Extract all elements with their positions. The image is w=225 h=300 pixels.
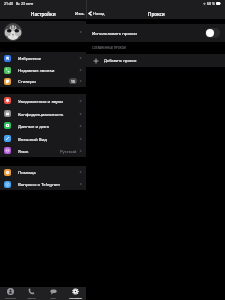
staticText: Данные и диск (18, 123, 50, 129)
button[interactable]: Добавить прокси (86, 54, 225, 67)
staticText: 68 % (207, 1, 215, 6)
staticText: Вс 23 сент (16, 1, 34, 6)
staticText: Настройки (31, 11, 56, 17)
button[interactable]: Настройки (64, 287, 86, 300)
button[interactable]: Использовать прокси (86, 24, 225, 42)
staticText: Чаты (50, 296, 56, 299)
button[interactable]: Помощь (0, 166, 86, 178)
button[interactable]: Звонки (21, 287, 42, 300)
staticText: Использовать прокси (92, 30, 138, 36)
button[interactable]: Назад (87, 11, 105, 16)
button[interactable]: Изм. (74, 11, 86, 17)
button[interactable]: Данные и диск (0, 119, 86, 132)
staticText: Звонки (27, 296, 36, 299)
staticText: Русский (60, 148, 77, 154)
button[interactable]: Вопросы о Telegram (0, 178, 86, 190)
button[interactable]: Избранное (0, 52, 86, 64)
button[interactable]: Уведомления и звуки (0, 94, 86, 107)
staticText: Контакты (5, 296, 16, 299)
staticText: Помощь (18, 169, 36, 175)
staticText: Недавние звонки (18, 67, 55, 73)
button[interactable]: Стикеры (0, 75, 86, 87)
button[interactable] (0, 21, 86, 42)
staticText: Изм. (75, 11, 85, 17)
staticText: Уведомления и звуки (18, 98, 64, 104)
staticText: Добавить прокси (104, 58, 137, 63)
button[interactable]: Конфиденциальность (0, 107, 86, 120)
staticText: Настройки (69, 296, 82, 299)
button[interactable]: Недавние звонки (0, 64, 86, 76)
staticText: Конфиденциальность (18, 111, 64, 117)
button[interactable]: Контакты (0, 287, 21, 300)
staticText: 21:40 (4, 1, 13, 6)
staticText: 15 (71, 79, 75, 84)
staticText: СОХРАНЕННЫЕ ПРОКСИ (92, 46, 126, 50)
button[interactable]: Язык (0, 144, 86, 157)
button[interactable]: Чаты (42, 287, 64, 300)
staticText: Стикеры (18, 78, 36, 84)
staticText: Прокси (148, 11, 165, 17)
staticText: Избранное (18, 55, 42, 61)
button[interactable]: Внешний Вид (0, 132, 86, 145)
staticText: Назад (93, 11, 105, 16)
staticText: Вопросы о Telegram (18, 181, 61, 187)
staticText: Язык (18, 148, 29, 154)
staticText: Внешний Вид (18, 136, 47, 142)
